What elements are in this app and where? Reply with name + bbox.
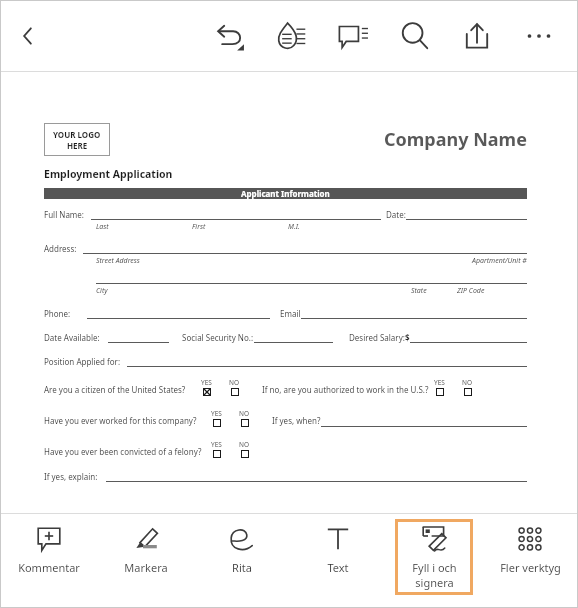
staticText: Text <box>327 560 349 575</box>
staticText: NO <box>239 440 250 449</box>
staticText: Have you ever been convicted of a felony… <box>44 446 202 457</box>
button[interactable]: YES <box>213 450 221 458</box>
staticText: YES <box>201 378 212 387</box>
button[interactable]: NO <box>241 419 249 427</box>
staticText: Fler verktyg <box>500 560 561 575</box>
button[interactable]: Highlight <box>260 8 322 64</box>
staticText: HERE <box>67 140 88 151</box>
staticText: Rita <box>232 560 252 575</box>
staticText: Date: <box>386 209 406 220</box>
button[interactable]: More options <box>508 8 570 64</box>
staticText: NO <box>229 378 240 387</box>
staticText: YOUR LOGO <box>53 129 101 140</box>
staticText: Apartment/Unit # <box>472 256 527 266</box>
button[interactable]: NO <box>241 450 249 458</box>
staticText: NO <box>239 409 250 418</box>
staticText: Phone: <box>44 308 71 319</box>
staticText: City <box>96 286 108 296</box>
button[interactable]: Comment <box>322 8 384 64</box>
staticText: Email <box>280 308 301 319</box>
button[interactable]: Back <box>10 18 46 54</box>
staticText: Street Address <box>96 256 140 266</box>
button[interactable]: NO <box>464 388 472 396</box>
staticText: If yes, when? <box>272 415 321 426</box>
button[interactable]: Kommentar <box>10 519 88 580</box>
button[interactable]: YES <box>203 388 211 396</box>
staticText: YES <box>434 378 445 387</box>
staticText: signera <box>415 575 454 590</box>
staticText: Date Available: <box>44 332 100 343</box>
staticText: First <box>192 222 288 232</box>
staticText: Applicant Information <box>241 188 330 199</box>
staticText: If no, are you authorized to work in the… <box>262 384 429 395</box>
button[interactable]: Search <box>384 8 446 64</box>
button[interactable]: YES <box>213 419 221 427</box>
staticText: Markera <box>124 560 168 575</box>
button[interactable]: Text <box>299 519 377 580</box>
staticText: Company Name <box>384 127 527 152</box>
staticText: Full Name: <box>44 209 85 220</box>
button[interactable]: Rita <box>203 519 281 580</box>
staticText: State <box>411 286 427 296</box>
staticText: $ <box>405 332 410 343</box>
staticText: Kommentar <box>18 560 80 575</box>
button[interactable]: NO <box>231 388 239 396</box>
staticText: Fyll i och <box>412 560 457 575</box>
button[interactable]: Fyll i och <box>395 519 473 595</box>
staticText: Are you a citizen of the United States? <box>44 384 186 395</box>
staticText: Desired Salary: <box>349 332 405 343</box>
staticText: Address: <box>44 243 77 254</box>
button[interactable]: Undo <box>198 8 260 64</box>
staticText: Have you ever worked for this company? <box>44 415 197 426</box>
button[interactable]: Fler verktyg <box>491 519 569 580</box>
button[interactable]: Share <box>446 8 508 64</box>
button[interactable]: Markera <box>107 519 185 580</box>
staticText: YES <box>211 409 222 418</box>
staticText: Employment Application <box>44 167 173 181</box>
staticText: Position Applied for: <box>44 356 121 367</box>
staticText: Social Security No.: <box>182 332 254 343</box>
staticText: Last <box>96 222 192 232</box>
staticText: M.I. <box>288 222 300 232</box>
staticText: If yes, explain: <box>44 471 98 482</box>
button[interactable]: YES <box>436 388 444 396</box>
staticText: NO <box>462 378 473 387</box>
staticText: YES <box>211 440 222 449</box>
staticText: ZIP Code <box>457 286 485 296</box>
